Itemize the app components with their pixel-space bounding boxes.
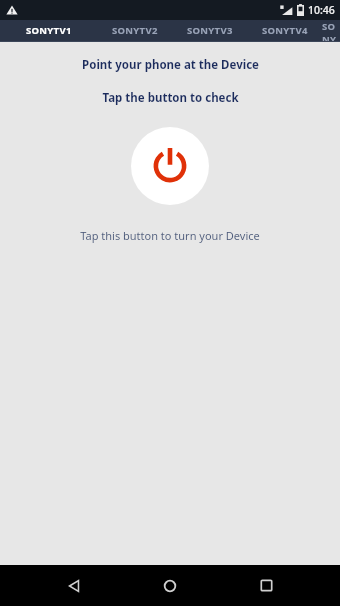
staticText: SONYTV3 [187, 24, 233, 37]
button[interactable]: SONYTV4 [247, 20, 322, 41]
button[interactable]: Home [148, 565, 192, 606]
button[interactable]: SONYTV3 [172, 20, 247, 41]
staticText: SONY [322, 20, 340, 41]
button[interactable]: SONYTV1 [0, 20, 97, 41]
staticText: Tap this button to turn your Device [80, 228, 260, 243]
button[interactable]: SONY [322, 20, 340, 41]
staticText: SONYTV1 [26, 24, 72, 37]
button[interactable]: Recent apps [244, 565, 288, 606]
staticText: Tap the button to check [102, 90, 239, 106]
button[interactable]: Back [52, 565, 96, 606]
staticText: SONYTV4 [262, 24, 308, 37]
button[interactable]: SONYTV2 [97, 20, 172, 41]
staticText: SONYTV2 [112, 24, 158, 37]
button[interactable]: Power [131, 127, 209, 205]
staticText: 10:46 [308, 3, 335, 17]
staticText: Point your phone at the Device [82, 57, 259, 73]
